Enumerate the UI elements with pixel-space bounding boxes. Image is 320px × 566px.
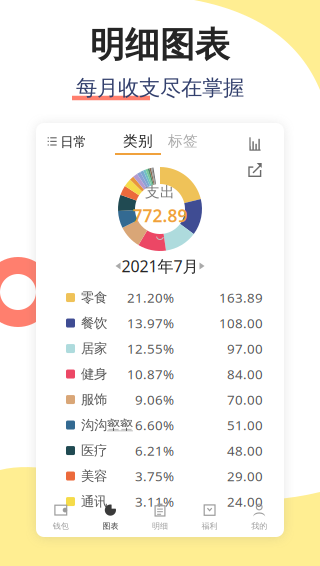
staticText: 13.97%: [127, 314, 174, 332]
button[interactable]: 通讯: [36, 489, 284, 514]
button[interactable]: 我的: [234, 499, 284, 535]
staticText: 6.60%: [135, 416, 174, 434]
staticText: 服饰: [81, 391, 107, 408]
staticText: 通讯: [81, 493, 107, 510]
button[interactable]: Share: [242, 157, 268, 183]
button[interactable]: 零食: [36, 285, 284, 310]
staticText: 48.00: [227, 442, 263, 459]
button[interactable]: 图表: [86, 499, 135, 535]
staticText: 163.89: [219, 289, 263, 306]
staticText: 美容: [81, 468, 107, 484]
button[interactable]: 标签: [160, 127, 206, 155]
staticText: 类别: [123, 132, 153, 150]
staticText: 明细: [152, 521, 168, 531]
staticText: 24.00: [227, 493, 263, 510]
staticText: 医疗: [81, 442, 107, 459]
staticText: 标签: [168, 132, 198, 150]
staticText: 3.11%: [135, 493, 174, 510]
staticText: 3.75%: [135, 467, 174, 485]
staticText: 我的: [251, 521, 267, 531]
staticText: 10.87%: [127, 365, 174, 383]
staticText: 51.00: [227, 416, 263, 434]
staticText: 772.89: [132, 204, 187, 227]
staticText: 2021年7月: [121, 255, 198, 277]
button[interactable]: 日常: [43, 128, 91, 156]
button[interactable]: 沟沟壑壑: [36, 412, 284, 438]
button[interactable]: Previous month: [109, 256, 126, 275]
staticText: 97.00: [227, 340, 263, 357]
staticText: 21.20%: [127, 289, 174, 306]
button[interactable]: 健身: [36, 361, 284, 387]
staticText: 9.06%: [135, 391, 174, 408]
staticText: 108.00: [219, 314, 263, 332]
button[interactable]: 钱包: [36, 499, 86, 535]
button[interactable]: 医疗: [36, 438, 284, 463]
staticText: 日常: [60, 134, 86, 150]
staticText: 6.21%: [135, 442, 174, 459]
button[interactable]: 明细: [135, 499, 185, 535]
button[interactable]: 福利: [185, 499, 234, 535]
staticText: 钱包: [53, 521, 69, 531]
staticText: 零食: [81, 289, 107, 306]
staticText: 支出: [145, 183, 175, 201]
button[interactable]: Next month: [193, 256, 210, 275]
button[interactable]: Bar chart: [243, 131, 267, 157]
button[interactable]: 服饰: [36, 387, 284, 412]
staticText: 明细图表: [90, 24, 230, 66]
staticText: 沟沟壑壑: [81, 417, 133, 433]
staticText: 29.00: [227, 467, 263, 485]
button[interactable]: 居家: [36, 336, 284, 361]
button[interactable]: 美容: [36, 463, 284, 489]
staticText: 图表: [102, 521, 118, 531]
staticText: 84.00: [227, 365, 263, 383]
staticText: 福利: [202, 521, 218, 531]
button[interactable]: 餐饮: [36, 310, 284, 336]
staticText: 70.00: [227, 391, 263, 408]
staticText: 居家: [81, 340, 107, 357]
staticText: 餐饮: [81, 315, 107, 331]
staticText: 健身: [81, 366, 107, 382]
staticText: 每月收支尽在掌握: [76, 75, 244, 101]
button[interactable]: 类别: [115, 127, 161, 155]
staticText: 12.55%: [127, 340, 174, 357]
